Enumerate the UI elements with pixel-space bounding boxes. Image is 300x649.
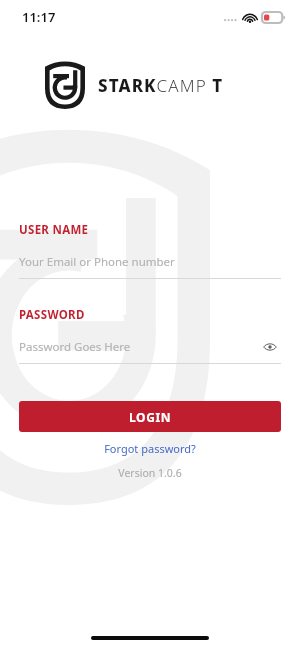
staticText: STARKCAMP T [98, 74, 224, 97]
staticText: PASSWORD [19, 307, 85, 323]
button[interactable]: Show password [259, 336, 281, 358]
staticText: 11:17 [22, 8, 56, 26]
button[interactable]: Forgot password? [0, 441, 300, 456]
button[interactable]: Your Email or Phone number [19, 251, 281, 273]
staticText: Your Email or Phone number [19, 254, 175, 270]
staticText: Password Goes Here [19, 339, 131, 355]
button[interactable]: LOGIN [19, 401, 281, 432]
staticText: Version 1.0.6 [118, 466, 182, 480]
staticText: Forgot password? [104, 441, 196, 456]
staticText: USER NAME [19, 222, 89, 238]
staticText: LOGIN [129, 409, 172, 425]
button[interactable]: Password Goes Here [19, 336, 259, 358]
